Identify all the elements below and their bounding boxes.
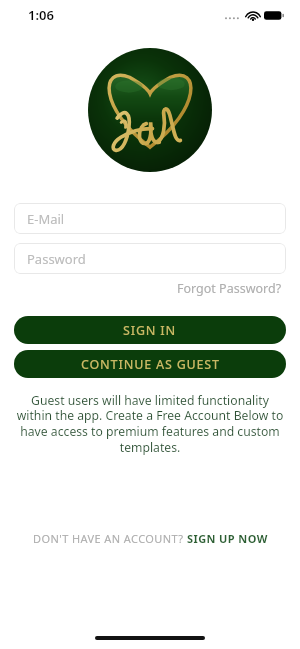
staticText: DON'T HAVE AN ACCOUNT? xyxy=(33,531,187,546)
staticText: SIGN IN xyxy=(123,322,177,339)
staticText: CONTINUE AS GUEST xyxy=(81,356,220,373)
button[interactable]: E-Mail xyxy=(14,203,286,234)
staticText: Guest users will have limited functional… xyxy=(14,392,286,456)
button[interactable]: SIGN IN xyxy=(14,316,286,344)
button[interactable]: DON'T HAVE AN ACCOUNT? xyxy=(0,527,300,550)
button[interactable]: Password xyxy=(14,243,286,274)
staticText: 1:06 xyxy=(28,6,54,24)
staticText: SIGN UP NOW xyxy=(187,531,268,546)
staticText: Forgot Password? xyxy=(177,280,282,297)
staticText: E-Mail xyxy=(27,210,65,228)
button[interactable]: Forgot Password? xyxy=(175,278,284,299)
staticText: Password xyxy=(27,250,86,268)
button[interactable]: CONTINUE AS GUEST xyxy=(14,350,286,378)
